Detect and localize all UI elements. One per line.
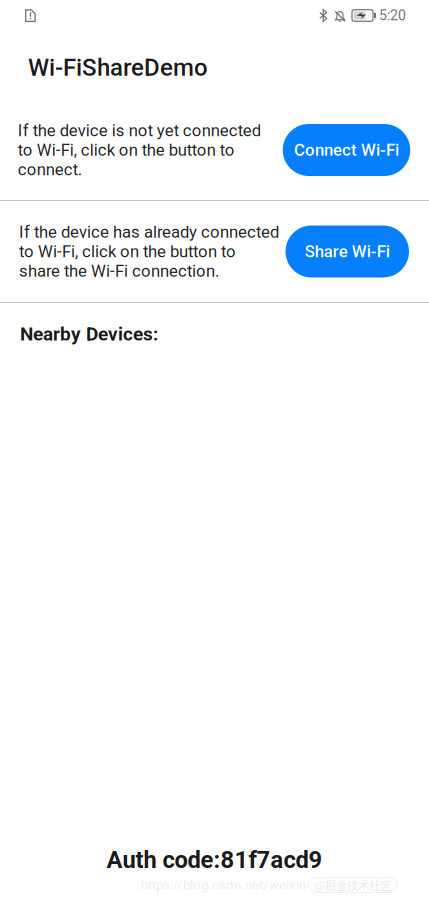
- staticText: Share Wi-Fi: [305, 242, 390, 261]
- staticText: 5:20: [379, 7, 406, 24]
- staticText: Wi-FiShareDemo: [28, 53, 208, 81]
- staticText: https://blog.csdn.net/weixin: [141, 877, 306, 893]
- staticText: Auth code:81f7acd9: [106, 846, 322, 874]
- staticText: @掘金技术社区: [314, 877, 391, 893]
- staticText: If the device has already connected to W…: [19, 222, 279, 281]
- staticText: Connect Wi-Fi: [294, 140, 399, 160]
- button[interactable]: Connect Wi-Fi: [283, 124, 410, 176]
- staticText: If the device is not yet connected to Wi…: [18, 121, 261, 179]
- staticText: Nearby Devices:: [20, 323, 158, 345]
- button[interactable]: Share Wi-Fi: [285, 225, 409, 277]
